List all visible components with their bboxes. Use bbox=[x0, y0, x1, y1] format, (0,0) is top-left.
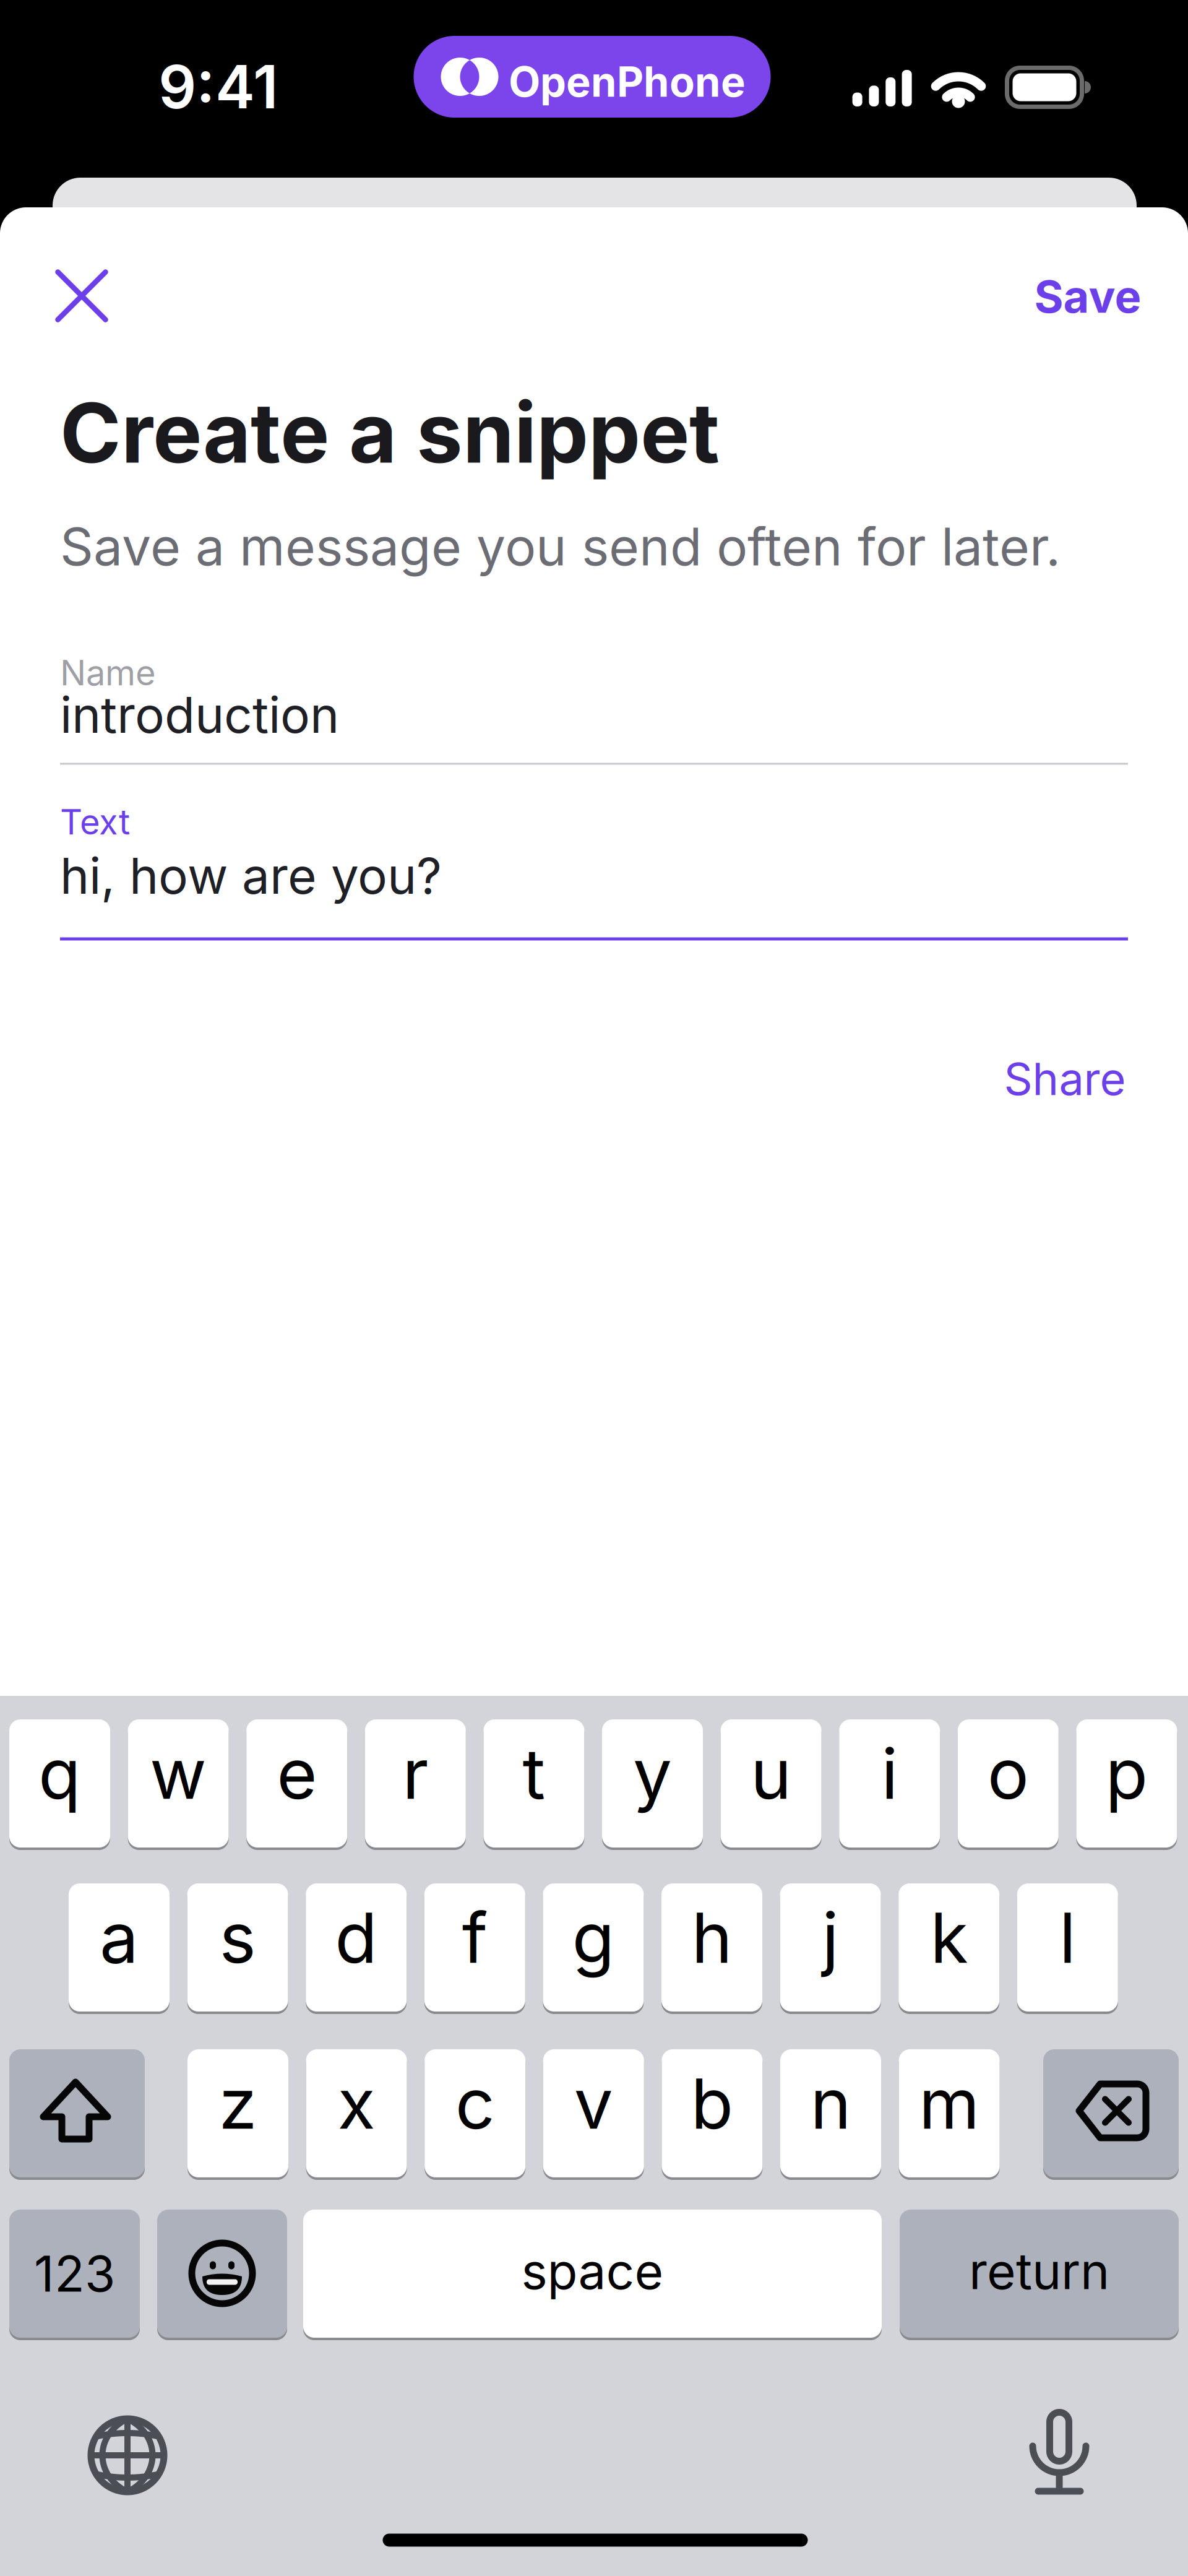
button[interactable]: z bbox=[187, 2049, 288, 2177]
staticText: q bbox=[38, 1733, 81, 1814]
button[interactable]: Dictate bbox=[1010, 2397, 1109, 2508]
staticText: s bbox=[219, 1897, 256, 1978]
button[interactable]: t bbox=[483, 1719, 584, 1848]
staticText: n bbox=[810, 2063, 851, 2144]
staticText: o bbox=[987, 1733, 1029, 1814]
button[interactable]: v bbox=[543, 2049, 644, 2177]
button[interactable]: Name bbox=[60, 650, 1128, 767]
button[interactable]: s bbox=[187, 1883, 288, 2012]
staticText: u bbox=[751, 1733, 791, 1814]
button[interactable]: j bbox=[780, 1883, 881, 2012]
staticText: e bbox=[277, 1733, 317, 1814]
button[interactable]: y bbox=[602, 1719, 703, 1848]
button[interactable]: l bbox=[1017, 1883, 1118, 2012]
button[interactable]: Delete bbox=[1043, 2049, 1179, 2177]
staticText: i bbox=[881, 1733, 898, 1814]
staticText: t bbox=[522, 1733, 545, 1814]
staticText: introduction bbox=[60, 686, 339, 744]
staticText: y bbox=[633, 1733, 672, 1814]
staticText: l bbox=[1059, 1897, 1076, 1978]
staticText: k bbox=[930, 1897, 968, 1978]
staticText: Save a message you send often for later. bbox=[60, 516, 1061, 577]
staticText: p bbox=[1105, 1733, 1148, 1814]
button[interactable]: a bbox=[69, 1883, 170, 2012]
button[interactable]: g bbox=[543, 1883, 644, 2012]
button[interactable]: x bbox=[306, 2049, 407, 2177]
staticText: OpenPhone bbox=[509, 57, 746, 106]
staticText: f bbox=[462, 1897, 487, 1978]
staticText: a bbox=[100, 1897, 139, 1978]
staticText: Name bbox=[60, 652, 156, 693]
button[interactable]: u bbox=[721, 1719, 821, 1848]
button[interactable]: n bbox=[780, 2049, 881, 2177]
button[interactable]: f bbox=[424, 1883, 525, 2012]
staticText: Save bbox=[1034, 270, 1141, 323]
button[interactable]: d bbox=[306, 1883, 407, 2012]
button[interactable]: Emoji bbox=[157, 2210, 287, 2338]
button[interactable]: e bbox=[246, 1719, 347, 1848]
staticText: space bbox=[521, 2242, 664, 2300]
staticText: j bbox=[822, 1897, 839, 1978]
button[interactable]: Save bbox=[1034, 270, 1141, 323]
staticText: m bbox=[919, 2063, 980, 2144]
button[interactable]: p bbox=[1076, 1719, 1177, 1848]
staticText: v bbox=[574, 2063, 613, 2144]
staticText: z bbox=[219, 2063, 257, 2144]
staticText: h bbox=[691, 1897, 732, 1978]
button[interactable]: o bbox=[958, 1719, 1059, 1848]
button[interactable]: q bbox=[9, 1719, 110, 1848]
button[interactable]: c bbox=[425, 2049, 525, 2177]
button[interactable]: k bbox=[899, 1883, 999, 2012]
button[interactable]: b bbox=[662, 2049, 763, 2177]
staticText: b bbox=[691, 2063, 733, 2144]
staticText: x bbox=[338, 2063, 375, 2144]
staticText: w bbox=[150, 1733, 207, 1814]
staticText: hi, how are you? bbox=[60, 847, 442, 905]
staticText: r bbox=[402, 1733, 428, 1814]
button[interactable]: w bbox=[128, 1719, 229, 1848]
staticText: return bbox=[969, 2242, 1109, 2300]
button[interactable]: r bbox=[365, 1719, 466, 1848]
staticText: Text bbox=[60, 802, 130, 842]
button[interactable]: Text bbox=[60, 798, 1128, 942]
staticText: c bbox=[455, 2063, 495, 2144]
staticText: 123 bbox=[34, 2244, 115, 2303]
button[interactable]: Close bbox=[45, 259, 119, 333]
button[interactable]: 123 bbox=[9, 2210, 140, 2338]
button[interactable]: m bbox=[899, 2049, 1000, 2177]
button[interactable]: i bbox=[839, 1719, 940, 1848]
button[interactable]: space bbox=[303, 2210, 882, 2338]
button[interactable]: return bbox=[900, 2210, 1179, 2338]
button[interactable]: Shift bbox=[9, 2049, 145, 2177]
button[interactable]: Next keyboard bbox=[78, 2406, 177, 2505]
staticText: Share bbox=[1004, 1052, 1126, 1105]
staticText: g bbox=[572, 1897, 615, 1978]
button[interactable]: Share bbox=[1004, 1052, 1126, 1105]
staticText: 9:41 bbox=[158, 52, 278, 122]
button[interactable]: h bbox=[661, 1883, 762, 2012]
staticText: d bbox=[335, 1897, 378, 1978]
staticText: Create a snippet bbox=[60, 384, 720, 481]
